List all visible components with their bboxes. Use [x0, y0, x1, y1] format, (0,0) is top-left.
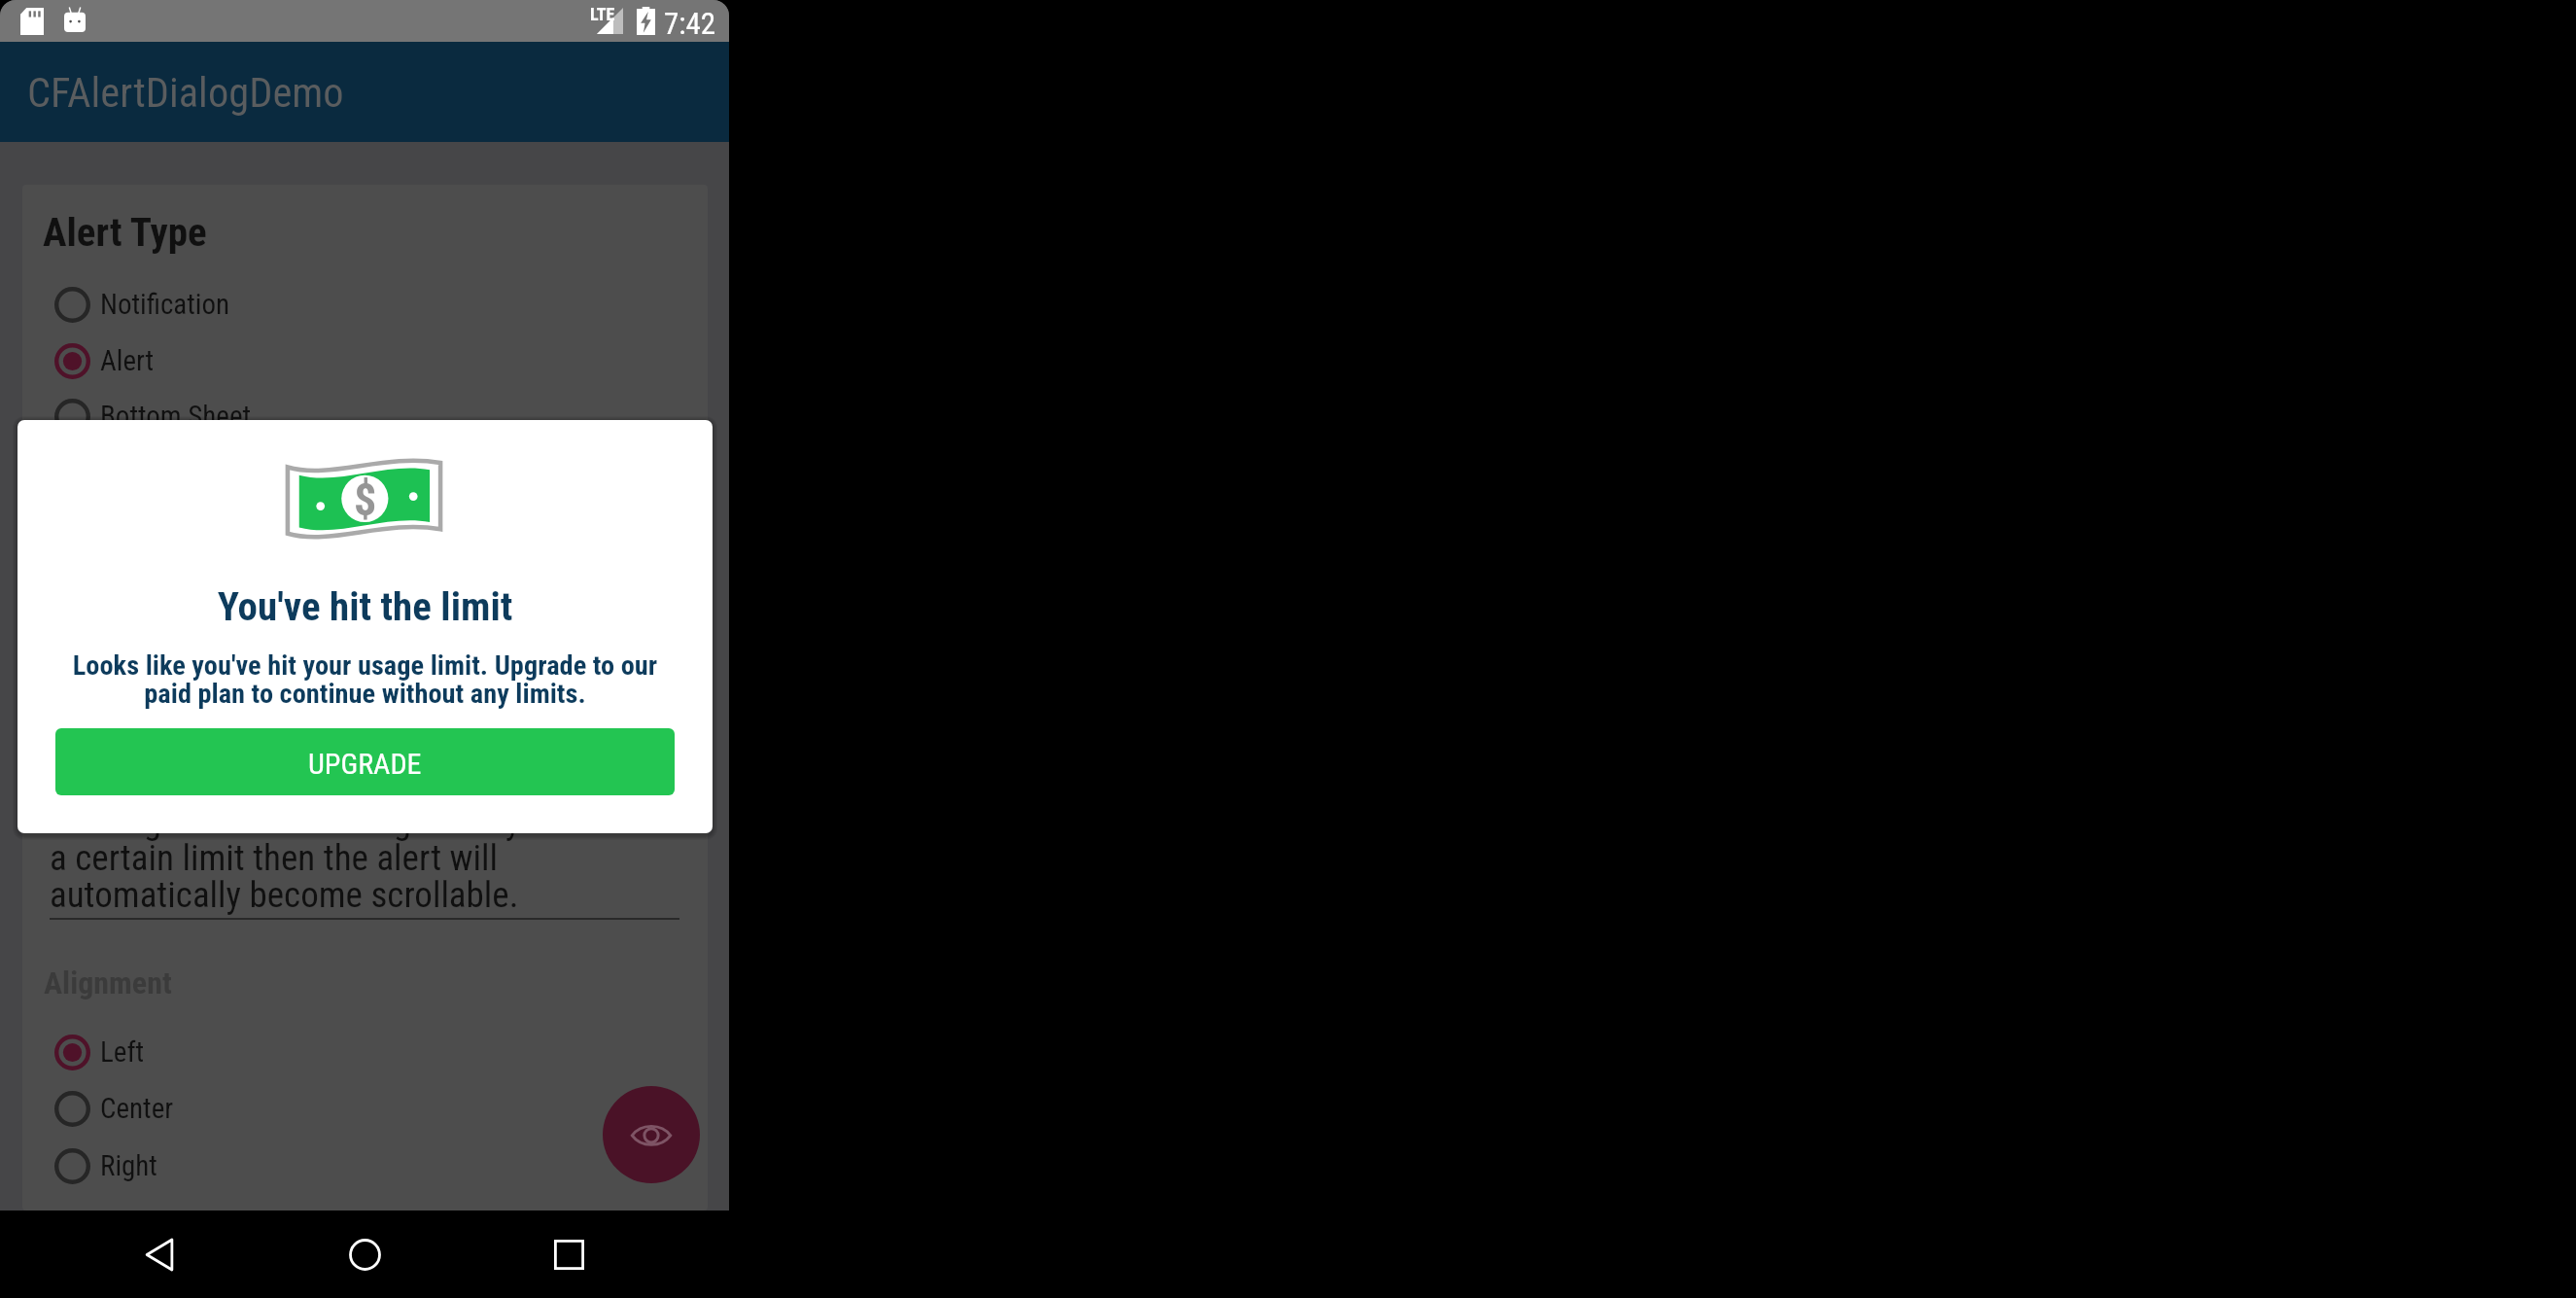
- staticText: UPGRADE: [308, 747, 422, 781]
- staticText: Looks like you've hit your usage limit. …: [17, 652, 713, 709]
- staticText: CFAlertDialogDemo: [27, 69, 344, 118]
- staticText: Bottom Sheet: [100, 400, 252, 433]
- button[interactable]: Back: [106, 1210, 213, 1298]
- staticText: Center: [100, 1092, 174, 1125]
- staticText: Notification: [100, 288, 230, 321]
- staticText: Alignment: [44, 965, 172, 1001]
- button[interactable]: Right: [54, 1143, 157, 1188]
- staticText: Left: [100, 1035, 145, 1069]
- button[interactable]: Center: [54, 1086, 174, 1131]
- staticText: Alert: [100, 344, 155, 377]
- button[interactable]: Preview alert: [603, 1086, 700, 1183]
- staticText: You've hit the limit: [17, 583, 713, 630]
- button[interactable]: Bottom Sheet: [54, 394, 252, 439]
- staticText: LTE: [590, 4, 615, 24]
- button[interactable]: Notification: [54, 282, 230, 327]
- staticText: Alert Type: [43, 209, 207, 256]
- staticText: $: [354, 474, 377, 526]
- staticText: Right: [100, 1149, 157, 1182]
- button[interactable]: Left: [54, 1030, 145, 1074]
- button[interactable]: Home: [311, 1210, 418, 1298]
- button[interactable]: Recent apps: [515, 1210, 622, 1298]
- staticText: 7:42: [664, 6, 716, 41]
- staticText: message. If the content goes beyond a ce…: [50, 804, 574, 915]
- button[interactable]: Alert: [54, 338, 155, 383]
- button[interactable]: UPGRADE: [55, 728, 675, 795]
